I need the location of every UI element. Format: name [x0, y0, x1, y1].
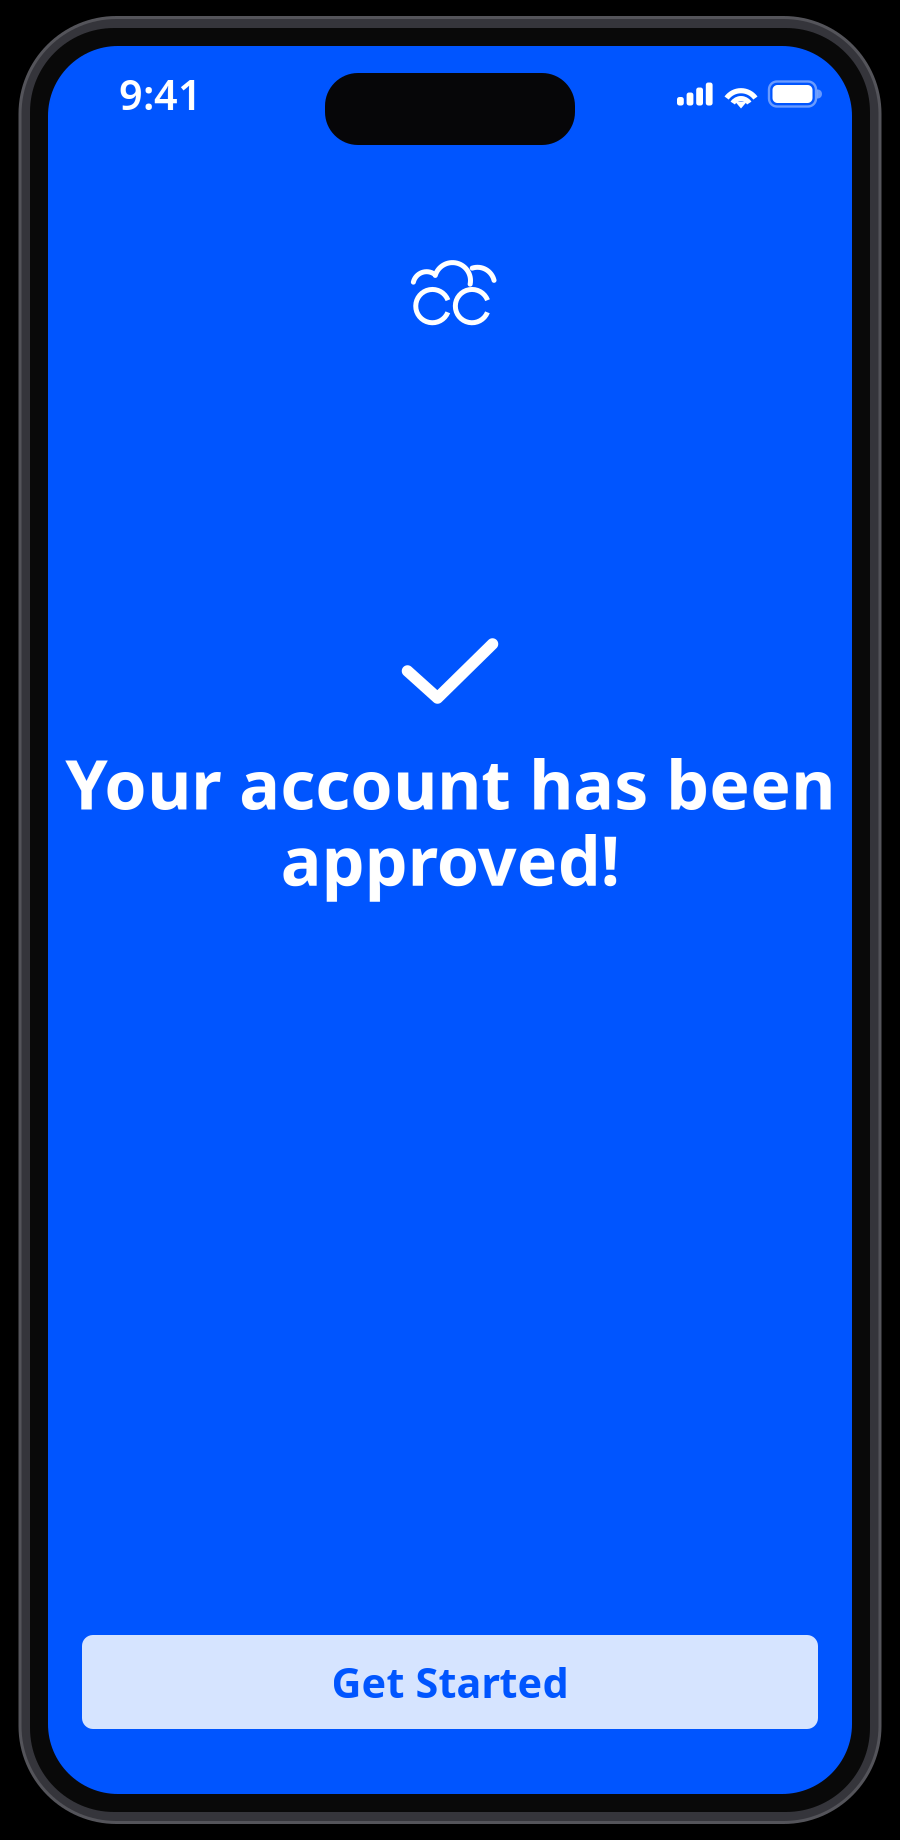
staticText: 9:41 [119, 67, 202, 121]
button[interactable]: Get Started [82, 1635, 818, 1729]
staticText: Get Started [331, 1655, 568, 1709]
staticText: Your account has been approved! [65, 738, 835, 905]
